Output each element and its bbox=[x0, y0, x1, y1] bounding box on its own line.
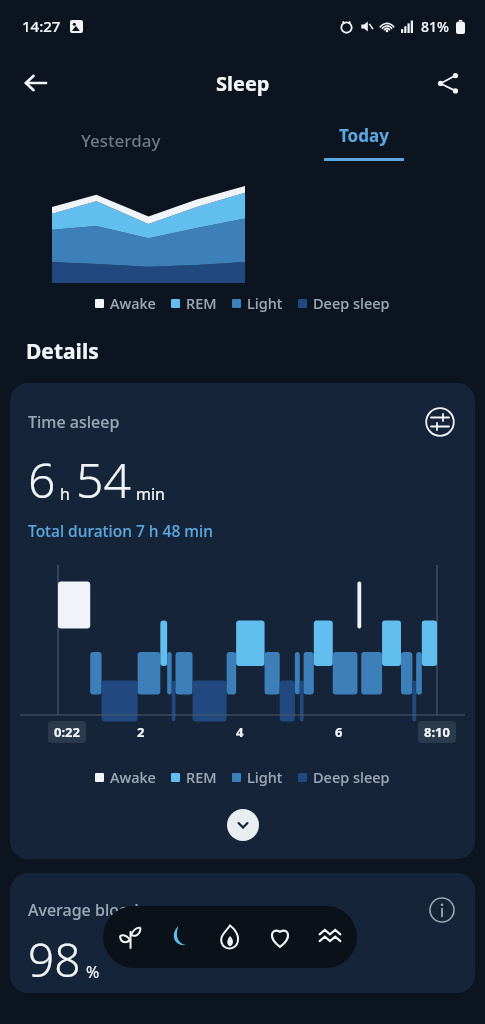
staticText: 81% bbox=[421, 17, 449, 36]
staticText: Yesterday bbox=[81, 129, 161, 152]
staticText: Time asleep bbox=[28, 411, 120, 433]
button[interactable]: Trends bbox=[307, 914, 353, 960]
button[interactable]: Average blood oxygen bbox=[10, 873, 475, 993]
staticText: Light bbox=[247, 767, 283, 787]
staticText: 6 bbox=[335, 723, 343, 741]
staticText: Total duration 7 h 48 min bbox=[28, 520, 213, 541]
button[interactable]: Adjust bbox=[423, 405, 457, 439]
button[interactable]: Activity bbox=[107, 914, 153, 960]
staticText: Sleep bbox=[216, 70, 270, 97]
staticText: 0:22 bbox=[54, 723, 80, 741]
staticText: 6 bbox=[28, 447, 56, 512]
staticText: REM bbox=[186, 767, 217, 787]
button[interactable]: Info bbox=[427, 895, 457, 925]
button[interactable]: Today bbox=[242, 114, 485, 166]
staticText: REM bbox=[186, 293, 217, 313]
staticText: 8:10 bbox=[424, 723, 450, 741]
staticText: 98 bbox=[28, 928, 81, 991]
staticText: 4 bbox=[236, 723, 244, 741]
staticText: min bbox=[136, 483, 165, 505]
button[interactable]: Expand bbox=[227, 809, 259, 841]
button[interactable]: Heart rate bbox=[257, 914, 303, 960]
staticText: Awake bbox=[110, 767, 156, 787]
staticText: Details bbox=[26, 337, 99, 366]
button[interactable]: Sleep bbox=[157, 914, 203, 960]
button[interactable]: Share bbox=[425, 60, 471, 106]
staticText: Deep sleep bbox=[313, 293, 390, 313]
button[interactable]: Yesterday bbox=[0, 114, 242, 166]
staticText: 14:27 bbox=[22, 16, 61, 36]
staticText: 54 bbox=[76, 447, 131, 512]
staticText: Light bbox=[247, 293, 283, 313]
staticText: Deep sleep bbox=[313, 767, 390, 787]
staticText: % bbox=[86, 961, 100, 983]
staticText: Average blood oxygen bbox=[28, 899, 199, 921]
button[interactable]: Time asleep bbox=[10, 383, 475, 859]
button[interactable]: Back bbox=[12, 59, 60, 107]
button[interactable]: Calories bbox=[207, 914, 253, 960]
staticText: Awake bbox=[110, 293, 156, 313]
staticText: h bbox=[60, 483, 70, 505]
staticText: Today bbox=[339, 124, 389, 147]
staticText: 2 bbox=[137, 723, 145, 741]
